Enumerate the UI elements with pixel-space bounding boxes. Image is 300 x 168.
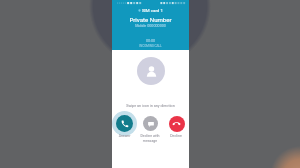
staticText: Decline: [163, 134, 189, 138]
staticText: Mobile 000000000: [112, 24, 189, 28]
button[interactable]: Decline: [164, 111, 189, 136]
staticText: Answer: [112, 134, 137, 138]
staticText: Decline with message: [137, 134, 163, 143]
staticText: Swipe an icon in any direction: [112, 104, 189, 108]
staticText: Private Number: [112, 16, 189, 23]
staticText: 00:00: [112, 39, 189, 43]
staticText: SIM card 1: [142, 8, 163, 13]
staticText: INCOMING CALL: [112, 44, 189, 48]
button[interactable]: Decline with message: [138, 111, 163, 136]
button[interactable]: Answer: [112, 111, 137, 136]
